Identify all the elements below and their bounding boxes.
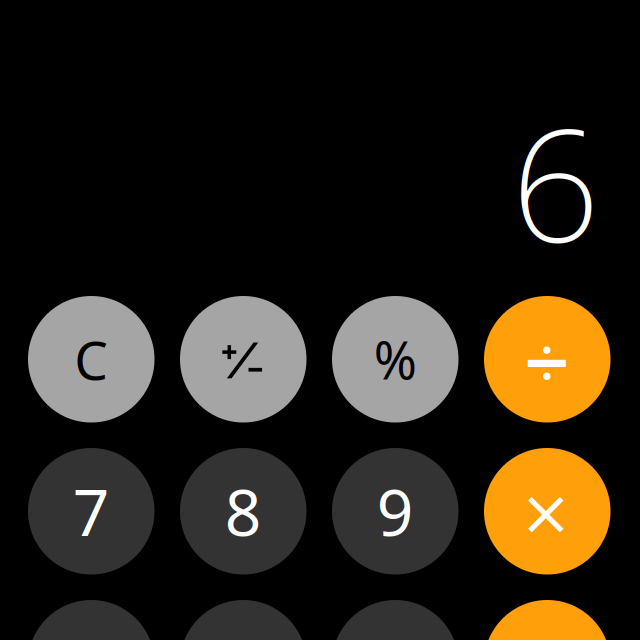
button[interactable]: Multiply (484, 448, 610, 574)
button[interactable]: 9 (332, 448, 458, 574)
button[interactable]: Subtract (484, 600, 610, 640)
button[interactable]: 7 (28, 448, 154, 574)
button[interactable]: 5 (180, 600, 306, 640)
staticText: 6 (511, 77, 600, 285)
button[interactable]: 8 (180, 448, 306, 574)
button[interactable]: Divide (484, 296, 610, 422)
staticText: % (374, 325, 417, 394)
staticText: 9 (377, 469, 414, 554)
staticText: C (74, 324, 108, 395)
button[interactable]: 4 (28, 600, 154, 640)
button[interactable]: Plus Minus (180, 296, 306, 422)
button[interactable]: 6 (332, 600, 458, 640)
button[interactable]: % (332, 296, 458, 422)
button[interactable]: C (28, 296, 154, 422)
staticText: 8 (225, 469, 262, 554)
staticText: 7 (73, 469, 110, 554)
